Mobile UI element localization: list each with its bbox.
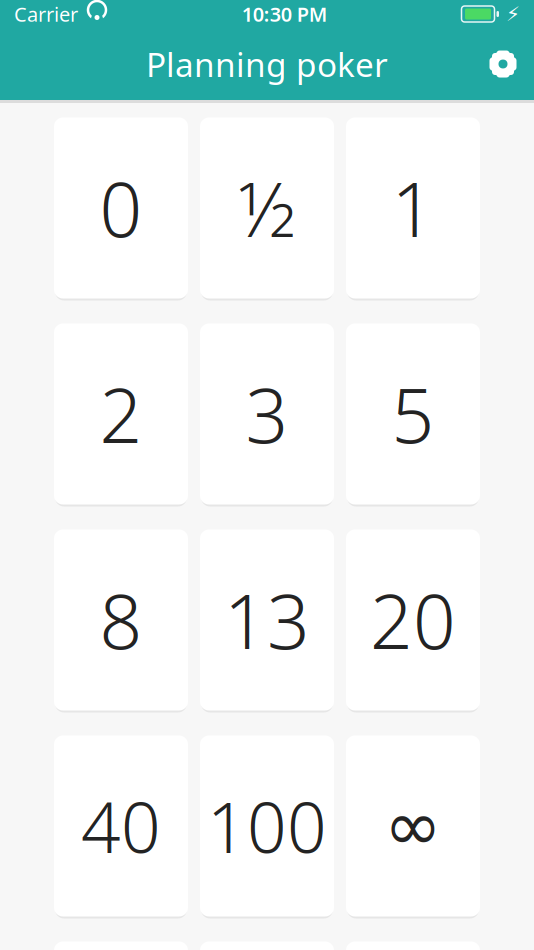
staticText: 0 — [99, 158, 142, 258]
button[interactable]: 2 — [54, 321, 188, 507]
button[interactable]: Settings — [472, 33, 534, 95]
staticText: 2 — [99, 364, 142, 464]
button[interactable] — [54, 939, 188, 950]
button[interactable]: 20 — [346, 527, 480, 713]
button[interactable]: 100 — [200, 733, 334, 919]
staticText: 3 — [245, 364, 288, 464]
staticText: ∞ — [384, 787, 442, 865]
staticText: 10:30 PM — [242, 1, 328, 27]
staticText: 5 — [391, 364, 434, 464]
button[interactable]: ☕ — [346, 939, 480, 950]
staticText: ⚡︎ — [506, 3, 520, 25]
button[interactable]: 13 — [200, 527, 334, 713]
button[interactable]: 0 — [54, 115, 188, 301]
button[interactable]: ½ — [200, 115, 334, 301]
staticText: 13 — [224, 570, 310, 670]
staticText: 8 — [99, 570, 142, 670]
staticText: 40 — [81, 780, 161, 872]
staticText: Planning poker — [146, 42, 388, 86]
button[interactable]: 5 — [346, 321, 480, 507]
button[interactable]: 1 — [346, 115, 480, 301]
staticText: 20 — [370, 570, 456, 670]
button[interactable]: 40 — [54, 733, 188, 919]
staticText: ½ — [238, 158, 295, 258]
button[interactable]: ? — [200, 939, 334, 950]
staticText: 1 — [391, 158, 434, 258]
button[interactable]: ∞ — [346, 733, 480, 919]
button[interactable]: 8 — [54, 527, 188, 713]
staticText: 100 — [207, 780, 327, 872]
staticText: Carrier — [14, 1, 78, 27]
button[interactable]: 3 — [200, 321, 334, 507]
